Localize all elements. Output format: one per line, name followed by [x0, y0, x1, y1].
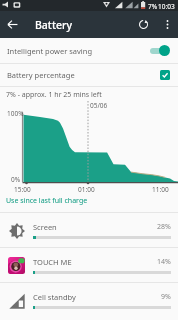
staticText: Cell standby [33, 292, 76, 302]
staticText: Battery [35, 18, 72, 32]
staticText: 7% - approx. 1 hr 25 mins left [6, 90, 102, 100]
staticText: 15:00 [14, 185, 31, 194]
staticText: Intelligent power saving [7, 46, 93, 56]
staticText: 05/06 [90, 101, 108, 110]
staticText: 14% [157, 257, 171, 267]
staticText: Screen [33, 222, 57, 232]
button[interactable]: Cell standby [0, 283, 178, 317]
button[interactable]: Screen [0, 213, 178, 247]
button[interactable]: Back [0, 11, 25, 38]
staticText: Battery percentage [7, 70, 75, 80]
staticText: 28% [157, 222, 171, 232]
staticText: 01:00 [78, 185, 95, 194]
button[interactable]: Battery percentage [0, 64, 178, 86]
button[interactable]: More options [156, 11, 178, 38]
staticText: 100% [7, 109, 24, 118]
button[interactable]: Use since last full charge [6, 196, 88, 206]
staticText: 0% [11, 175, 21, 184]
staticText: 9% [161, 292, 171, 302]
staticText: 7% [148, 2, 158, 11]
button[interactable]: Refresh [130, 11, 156, 38]
staticText: 10:03 [158, 2, 175, 11]
button[interactable]: Intelligent power saving [0, 38, 178, 63]
staticText: TOUCH ME [33, 257, 72, 267]
staticText: 11:00 [152, 185, 169, 194]
button[interactable]: TOUCH ME [0, 248, 178, 282]
